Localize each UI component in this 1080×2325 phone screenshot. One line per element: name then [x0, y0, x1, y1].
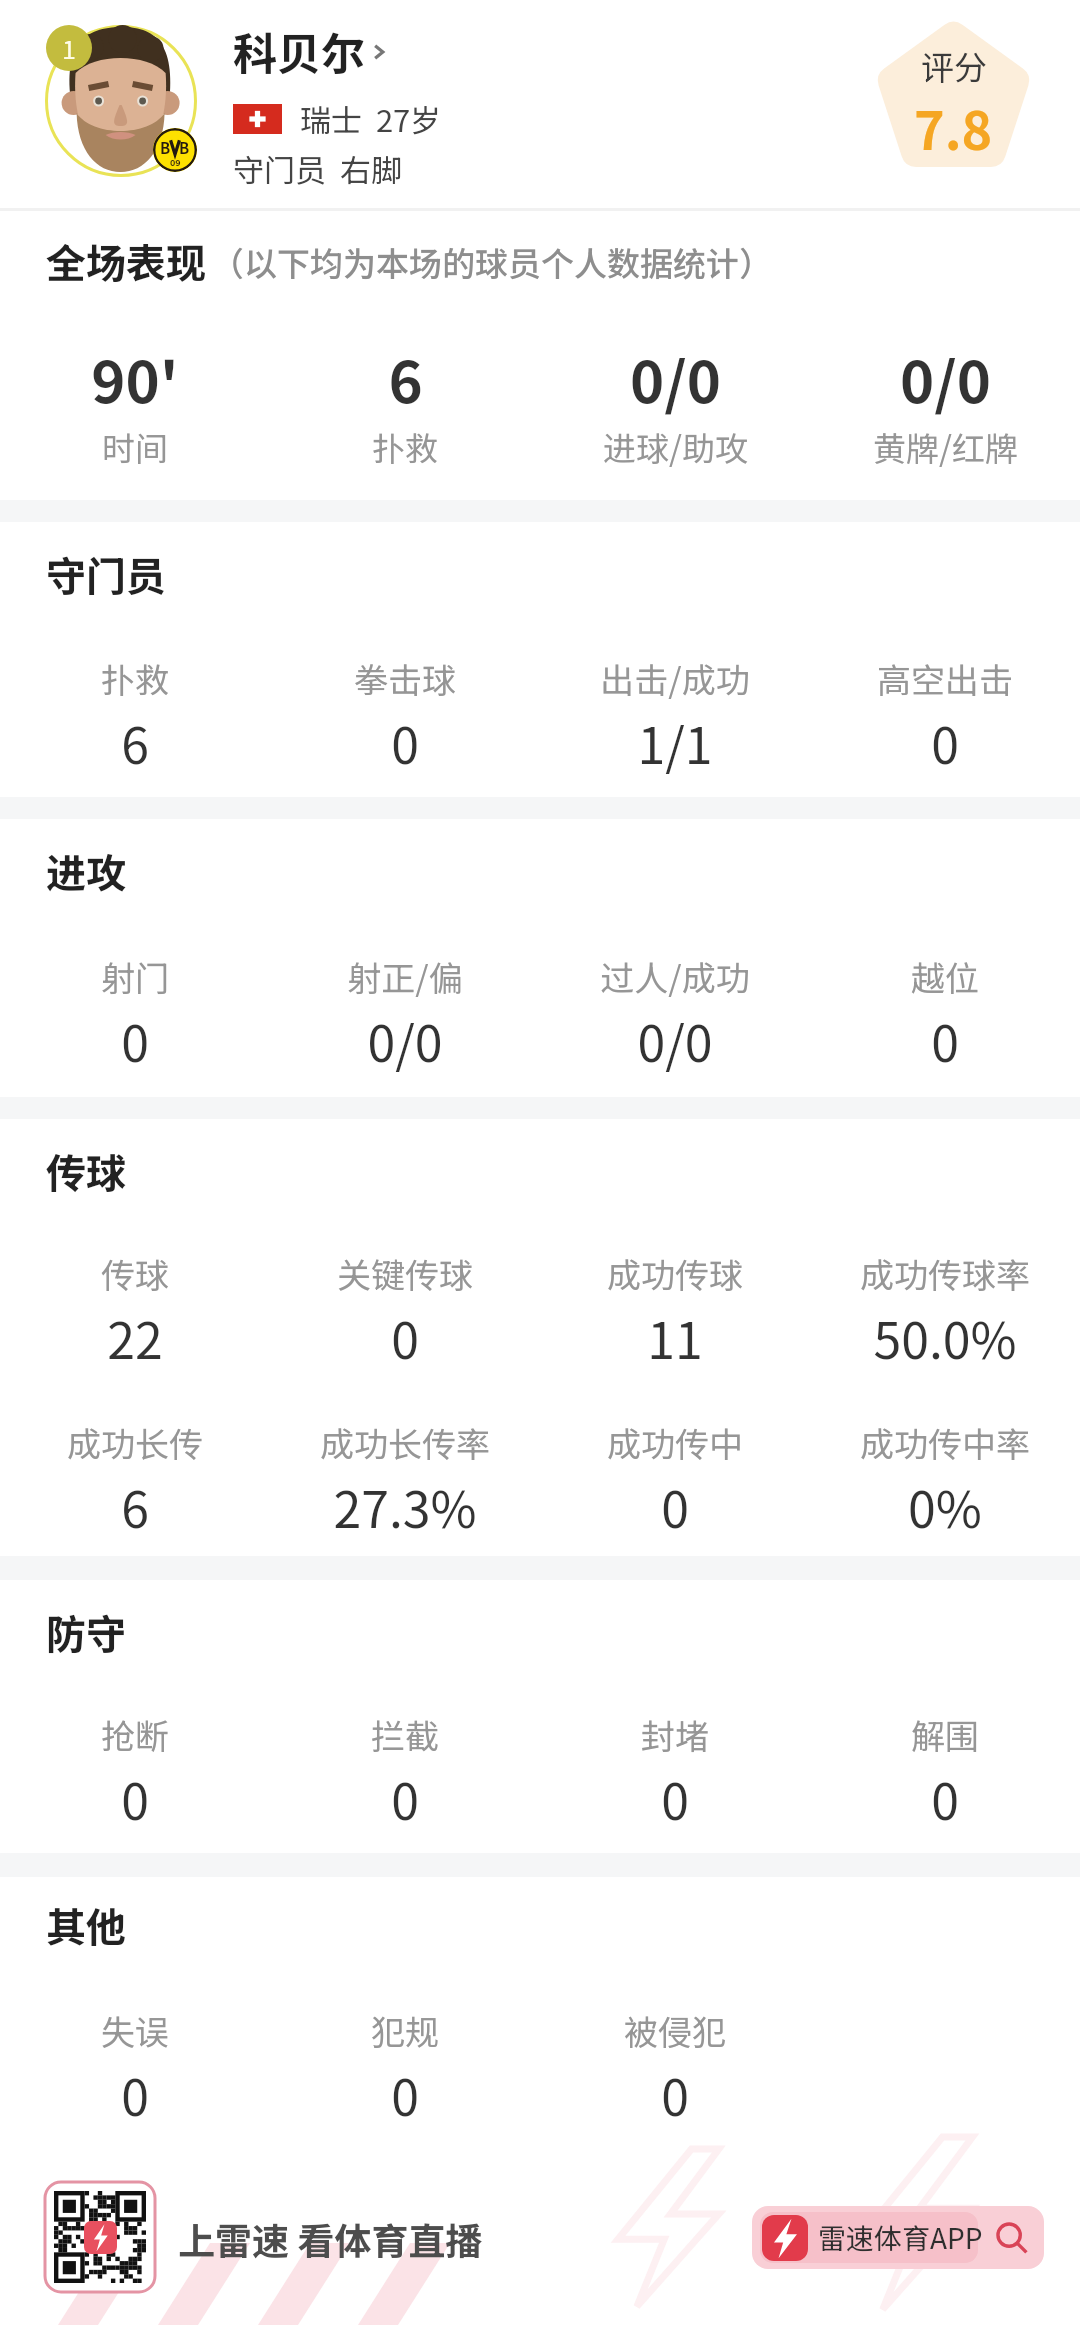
staticText: 成功传球率 [860, 1249, 1030, 1298]
button[interactable]: 成功传中率 [810, 1418, 1080, 1542]
staticText: 高空出击 [877, 654, 1013, 703]
staticText: 守门员 [46, 545, 166, 603]
staticText: 全场表现 [46, 232, 206, 290]
other: Search [994, 2220, 1030, 2256]
button[interactable]: 失误 [0, 2006, 270, 2130]
staticText: 被侵犯 [624, 2006, 726, 2055]
staticText: 进球/助攻 [603, 423, 748, 471]
staticText: 出击/成功 [600, 654, 750, 703]
button[interactable]: 成功传中 [540, 1418, 810, 1542]
staticText: 11 [647, 1301, 703, 1373]
staticText: 0 [931, 1762, 959, 1834]
button[interactable]: 0/0 [810, 337, 1080, 471]
staticText: 时间 [102, 423, 168, 471]
staticText: 进攻 [46, 842, 126, 900]
staticText: 上雷速 看体育直播 [178, 2212, 483, 2266]
button[interactable]: 6 [270, 337, 540, 471]
button[interactable]: 雷速体育APP [752, 2206, 1044, 2269]
button[interactable]: 拦截 [270, 1710, 540, 1834]
staticText: 解围 [911, 1710, 979, 1759]
staticText: 拳击球 [354, 654, 456, 703]
staticText: 黄牌/红牌 [873, 423, 1018, 471]
staticText: 0 [121, 2058, 149, 2130]
staticText: 6 [121, 706, 149, 778]
staticText: 0 [661, 1762, 689, 1834]
staticText: 1/1 [637, 706, 713, 778]
staticText: 雷速体育APP [818, 2217, 983, 2258]
staticText: 0 [391, 1301, 419, 1373]
button[interactable]: 射门 [0, 952, 270, 1076]
staticText: 越位 [911, 952, 979, 1001]
staticText: 成功传中率 [860, 1418, 1030, 1467]
button[interactable]: 高空出击 [810, 654, 1080, 778]
staticText: 其他 [46, 1896, 126, 1954]
staticText: 0 [121, 1004, 149, 1076]
staticText: 守门员 右脚 [233, 146, 402, 191]
staticText: 防守 [46, 1603, 126, 1661]
button[interactable]: 封堵 [540, 1710, 810, 1834]
staticText: 犯规 [371, 2006, 439, 2055]
staticText: 拦截 [371, 1710, 439, 1759]
staticText: （以下均为本场的球员个人数据统计） [211, 238, 772, 286]
staticText: 瑞士 27岁 [300, 96, 442, 141]
button[interactable]: 传球 [0, 1249, 270, 1373]
button[interactable]: 1 [0, 0, 1080, 211]
button[interactable]: 成功长传 [0, 1418, 270, 1542]
button[interactable]: 抢断 [0, 1710, 270, 1834]
button[interactable]: 扑救 [0, 654, 270, 778]
button[interactable]: 关键传球 [270, 1249, 540, 1373]
staticText: 成功传中 [607, 1418, 743, 1467]
staticText: 成功长传 [67, 1418, 203, 1467]
staticText: 传球 [101, 1249, 169, 1298]
button[interactable]: 0/0 [540, 337, 810, 471]
staticText: 0 [661, 1470, 689, 1542]
staticText: 评分 [921, 42, 987, 90]
staticText: 22 [107, 1301, 163, 1373]
staticText: 扑救 [101, 654, 169, 703]
staticText: 成功长传率 [320, 1418, 490, 1467]
staticText: 0/0 [630, 337, 721, 421]
staticText: 抢断 [101, 1710, 169, 1759]
staticText: 传球 [46, 1142, 126, 1200]
staticText: 失误 [101, 2006, 169, 2055]
staticText: 0% [908, 1470, 982, 1542]
staticText: 射正/偏 [347, 952, 463, 1001]
staticText: 6 [121, 1470, 149, 1542]
button[interactable]: 成功传球率 [810, 1249, 1080, 1373]
button[interactable]: 解围 [810, 1710, 1080, 1834]
staticText: 6 [388, 337, 423, 421]
staticText: 成功传球 [607, 1249, 743, 1298]
staticText: 0 [391, 706, 419, 778]
button[interactable]: 出击/成功 [540, 654, 810, 778]
button[interactable]: 拳击球 [270, 654, 540, 778]
staticText: 封堵 [641, 1710, 709, 1759]
staticText: 7.8 [914, 90, 993, 165]
staticText: 0 [391, 2058, 419, 2130]
button[interactable]: 过人/成功 [540, 952, 810, 1076]
button[interactable]: QR code [45, 2182, 155, 2292]
staticText: 0 [391, 1762, 419, 1834]
button[interactable]: 90' [0, 337, 270, 471]
staticText: 过人/成功 [600, 952, 750, 1001]
staticText: 0 [931, 1004, 959, 1076]
button[interactable]: 成功长传率 [270, 1418, 540, 1542]
staticText: 科贝尔 [233, 19, 365, 83]
staticText: 0 [121, 1762, 149, 1834]
button[interactable]: 被侵犯 [540, 2006, 810, 2130]
staticText: 50.0% [873, 1301, 1017, 1373]
staticText: 90' [91, 337, 179, 421]
button[interactable]: 犯规 [270, 2006, 540, 2130]
staticText: 0/0 [367, 1004, 443, 1076]
staticText: 27.3% [333, 1470, 477, 1542]
button[interactable]: 越位 [810, 952, 1080, 1076]
staticText: 扑救 [372, 423, 438, 471]
staticText: 0 [661, 2058, 689, 2130]
staticText: 0/0 [637, 1004, 713, 1076]
button[interactable]: 成功传球 [540, 1249, 810, 1373]
button[interactable]: 射正/偏 [270, 952, 540, 1076]
staticText: 关键传球 [337, 1249, 473, 1298]
staticText: 射门 [101, 952, 169, 1001]
staticText: 0/0 [900, 337, 991, 421]
staticText: 0 [931, 706, 959, 778]
staticText: B [179, 137, 190, 159]
